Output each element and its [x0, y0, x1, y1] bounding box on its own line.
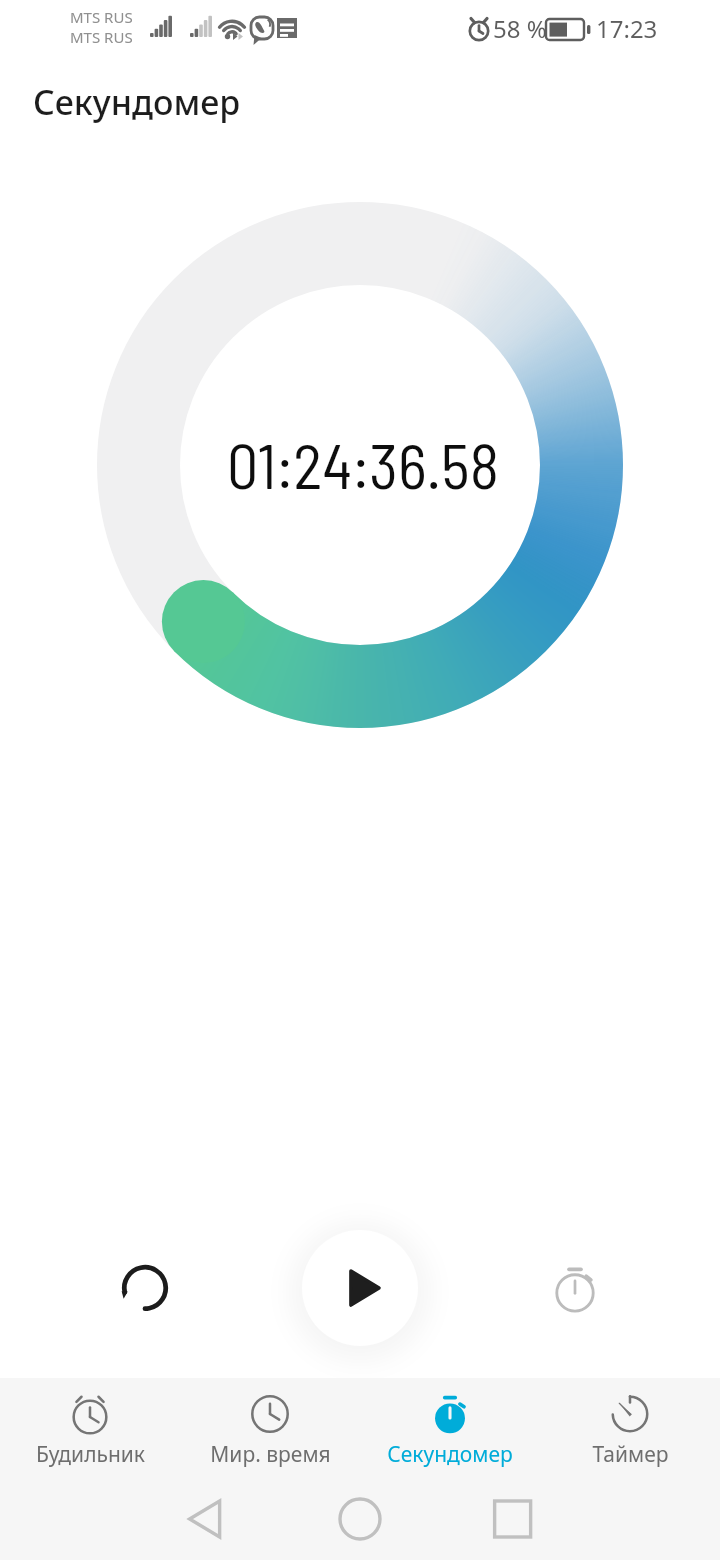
staticText: Мир. время: [210, 1440, 331, 1469]
button[interactable]: Lap: [535, 1248, 615, 1328]
staticText: MTS RUS: [70, 7, 133, 27]
button[interactable]: Таймер: [540, 1378, 720, 1469]
staticText: Будильник: [36, 1440, 145, 1469]
button[interactable]: Reset: [105, 1248, 185, 1328]
staticText: Секундомер: [33, 79, 241, 125]
button[interactable]: Секундомер: [360, 1378, 540, 1469]
staticText: 58 %: [493, 12, 547, 45]
staticText: Секундомер: [387, 1440, 513, 1469]
button[interactable]: Start: [302, 1230, 418, 1346]
button[interactable]: Мир. время: [180, 1378, 360, 1469]
staticText: Таймер: [592, 1440, 669, 1469]
staticText: MTS RUS: [70, 27, 133, 47]
staticText: 01:24:36.58: [227, 427, 499, 501]
button[interactable]: Будильник: [0, 1378, 180, 1469]
staticText: 17:23: [596, 12, 658, 45]
